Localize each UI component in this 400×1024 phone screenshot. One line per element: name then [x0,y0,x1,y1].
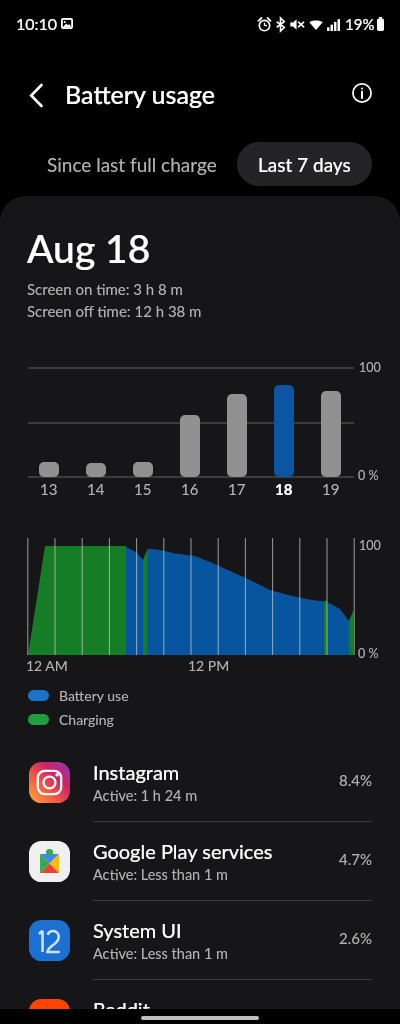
staticText: Active: 1 h 24 m [93,787,198,804]
staticText: 15 [134,480,152,498]
staticText: Google Play services [93,839,273,863]
staticText: Screen on time: 3 h 8 m [27,280,183,298]
staticText: System UI [93,918,182,942]
staticText: 4.7% [339,850,372,868]
staticText: 14 [87,480,105,498]
button[interactable]: Google Play services [0,822,400,901]
staticText: Active: Less than 1 m [93,866,228,883]
staticText: 0 % [358,468,379,483]
button[interactable]: Battery usage info [342,73,382,113]
staticText: Last 7 days [258,153,351,176]
staticText: 13 [40,480,58,498]
staticText: 12 PM [188,657,230,674]
button[interactable]: Last 7 days [237,142,372,186]
staticText: 1.9% [339,1008,372,1024]
staticText: Charging [59,711,114,728]
button[interactable]: Navigate up [16,75,56,115]
staticText: 19 [322,480,340,498]
staticText: Active: Less than 1 m [93,945,228,962]
staticText: Battery usage [65,79,215,109]
staticText: 16 [181,480,199,498]
staticText: 17 [228,480,246,498]
staticText: 2.6% [339,929,372,947]
button[interactable]: Since last full charge [31,142,233,186]
staticText: 19% [345,15,375,33]
staticText: 100 [359,538,381,553]
button[interactable]: Instagram [0,743,400,822]
staticText: 0 % [358,646,379,661]
staticText: 12 AM [26,657,68,674]
staticText: Since last full charge [47,153,217,176]
staticText: 18 [275,480,293,498]
staticText: 10:10 [16,14,58,33]
staticText: Reddit [93,997,150,1021]
button[interactable]: Reddit [0,980,400,1024]
staticText: 8.4% [339,771,372,789]
staticText: Instagram [93,760,180,784]
button[interactable]: System UI [0,901,400,980]
staticText: Battery use [59,687,129,704]
staticText: Screen off time: 12 h 38 m [27,302,202,320]
staticText: Aug 18 [27,225,151,272]
staticText: 100 [359,360,381,375]
